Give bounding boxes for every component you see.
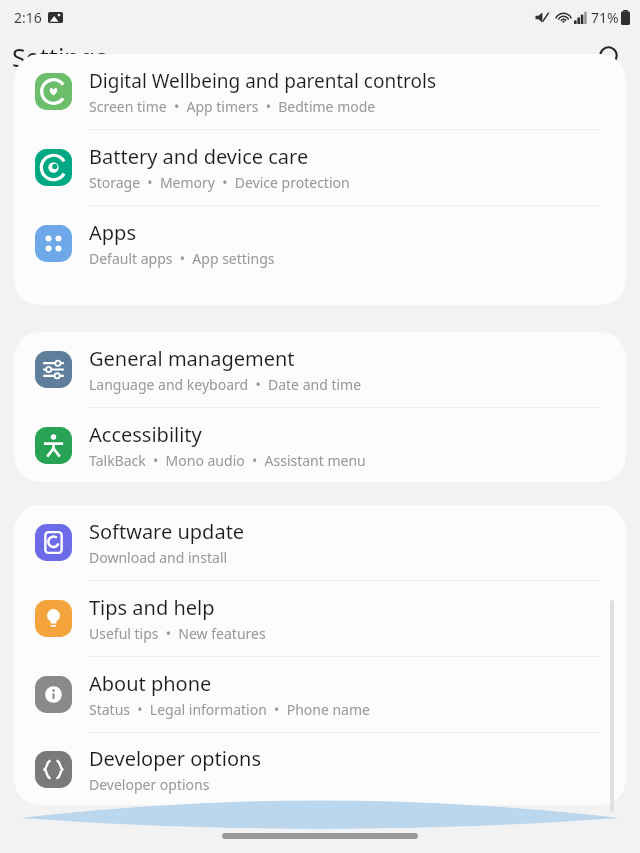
button[interactable]: Search [586, 33, 634, 81]
staticText: 2:16 [14, 8, 42, 27]
staticText: Software update [89, 518, 245, 545]
button[interactable]: Accessibility [14, 408, 626, 482]
staticText: Language and keyboard • Date and time [89, 375, 362, 394]
staticText: About phone [89, 670, 212, 697]
staticText: 71% [591, 8, 619, 27]
staticText: Accessibility [89, 421, 202, 448]
staticText: Status • Legal information • Phone name [89, 700, 370, 719]
staticText: Digital Wellbeing and parental controls [89, 68, 437, 94]
staticText: Battery and device care [89, 143, 309, 170]
staticText: Screen time • App timers • Bedtime mode [89, 97, 376, 116]
staticText: TalkBack • Mono audio • Assistant menu [89, 451, 366, 470]
button[interactable]: Tips and help [14, 581, 626, 656]
button[interactable]: About phone [14, 657, 626, 732]
button[interactable]: Battery and device care [14, 130, 626, 205]
button[interactable]: Apps [14, 206, 626, 281]
staticText: Download and install [89, 548, 228, 567]
staticText: Useful tips • New features [89, 624, 266, 643]
button[interactable]: Software update [14, 505, 626, 580]
button[interactable]: Developer options [14, 733, 626, 805]
staticText: Settings [12, 40, 108, 74]
staticText: Storage • Memory • Device protection [89, 173, 350, 192]
staticText: Tips and help [89, 594, 215, 621]
staticText: Developer options [89, 775, 210, 794]
staticText: Default apps • App settings [89, 249, 275, 268]
button[interactable]: General management [14, 332, 626, 407]
button[interactable]: Digital Wellbeing and parental controls [14, 54, 626, 129]
staticText: Developer options [89, 745, 262, 772]
staticText: Apps [89, 219, 136, 246]
staticText: General management [89, 345, 295, 372]
